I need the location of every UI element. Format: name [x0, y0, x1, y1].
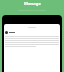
- staticText: everything in one place: [18, 8, 46, 11]
- staticText: Manage: [24, 1, 41, 7]
- button[interactable]: [5, 31, 59, 34]
